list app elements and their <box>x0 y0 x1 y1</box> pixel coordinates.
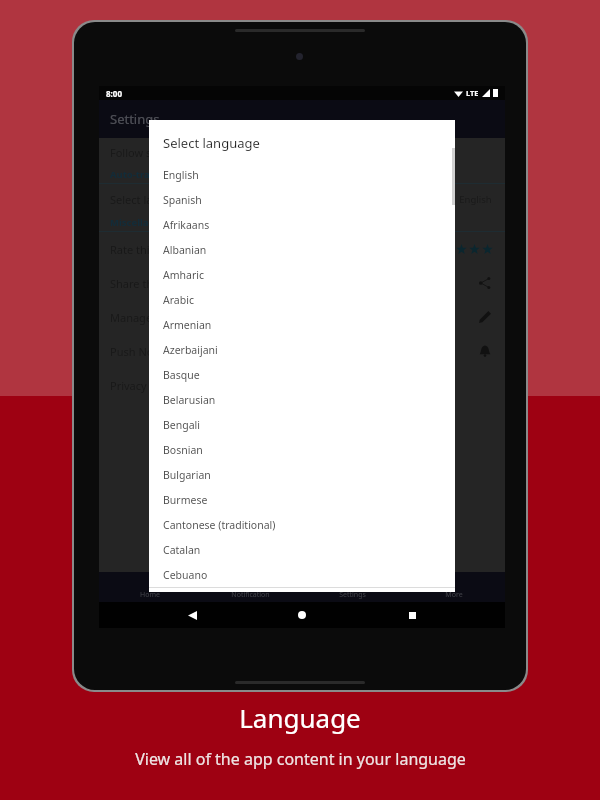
staticText: Settings <box>339 590 366 600</box>
button[interactable]: Arabic <box>149 287 455 312</box>
button[interactable]: Follow screen language <box>99 138 505 166</box>
button[interactable]: Share this app <box>99 266 505 300</box>
button[interactable]: Push Notifications <box>99 334 505 368</box>
button[interactable]: Spanish <box>149 187 455 212</box>
staticText: Privacy Policy <box>110 378 494 393</box>
staticText: Home <box>140 590 160 600</box>
staticText: Select language <box>163 134 260 152</box>
staticText: LTE <box>466 88 479 98</box>
button[interactable]: Rate this app <box>99 232 505 266</box>
staticText: Catalan <box>163 543 201 557</box>
button[interactable]: Notifications <box>476 342 494 360</box>
staticText: Language <box>239 700 361 735</box>
button[interactable]: Basque <box>149 362 455 387</box>
staticText: Follow screen language <box>110 145 494 160</box>
button[interactable]: Cantonese (traditional) <box>149 512 455 537</box>
button[interactable]: Albanian <box>149 237 455 262</box>
staticText: Afrikaans <box>163 218 210 232</box>
button[interactable]: Select language <box>99 184 505 214</box>
button[interactable]: Bulgarian <box>149 462 455 487</box>
staticText: Cantonese (traditional) <box>163 518 276 532</box>
button[interactable]: Cebuano <box>149 562 455 587</box>
button[interactable]: Settings <box>301 572 403 602</box>
button[interactable]: More <box>403 572 505 602</box>
staticText: Bosnian <box>163 443 203 457</box>
staticText: View all of the app content in your lang… <box>135 748 466 770</box>
staticText: Azerbaijani <box>163 343 218 357</box>
staticText: Bengali <box>163 418 201 432</box>
button[interactable]: Recents <box>395 602 429 628</box>
staticText: Share this app <box>110 276 476 291</box>
button[interactable]: Notification <box>200 572 301 602</box>
staticText: Push Notifications <box>110 344 476 359</box>
staticText: Belarusian <box>163 393 216 407</box>
button[interactable]: Back <box>175 602 209 628</box>
staticText: Manage Account <box>110 310 476 325</box>
staticText: Amharic <box>163 268 204 282</box>
staticText: Bulgarian <box>163 468 211 482</box>
button[interactable]: Privacy Policy <box>99 368 505 402</box>
button[interactable]: Belarusian <box>149 387 455 412</box>
staticText: Burmese <box>163 493 208 507</box>
staticText: Spanish <box>163 193 202 207</box>
button[interactable]: Home <box>99 572 200 602</box>
staticText: 8:00 <box>106 88 122 99</box>
button[interactable]: Burmese <box>149 487 455 512</box>
button[interactable]: Azerbaijani <box>149 337 455 362</box>
staticText: More <box>445 590 463 600</box>
button[interactable]: Catalan <box>149 537 455 562</box>
button[interactable]: Home <box>285 602 319 628</box>
staticText: Armenian <box>163 318 212 332</box>
button[interactable]: Manage Account <box>99 300 505 334</box>
staticText: Select language <box>110 192 459 207</box>
button[interactable]: Amharic <box>149 262 455 287</box>
staticText: English <box>459 193 492 206</box>
button[interactable]: Afrikaans <box>149 212 455 237</box>
staticText: Auto-translate <box>110 168 179 181</box>
staticText: Albanian <box>163 243 207 257</box>
staticText: English <box>163 168 199 182</box>
staticText: Miscellaneous <box>110 216 178 229</box>
staticText: Basque <box>163 368 200 382</box>
button[interactable]: Bengali <box>149 412 455 437</box>
staticText: Notification <box>231 590 270 600</box>
staticText: Arabic <box>163 293 194 307</box>
button[interactable]: Share <box>476 274 494 292</box>
staticText: Cebuano <box>163 568 208 582</box>
button[interactable]: Edit <box>476 308 494 326</box>
button[interactable]: English <box>149 162 455 187</box>
staticText: Rate this app <box>110 242 429 257</box>
button[interactable]: Bosnian <box>149 437 455 462</box>
button[interactable]: Armenian <box>149 312 455 337</box>
staticText: Settings <box>110 110 160 128</box>
